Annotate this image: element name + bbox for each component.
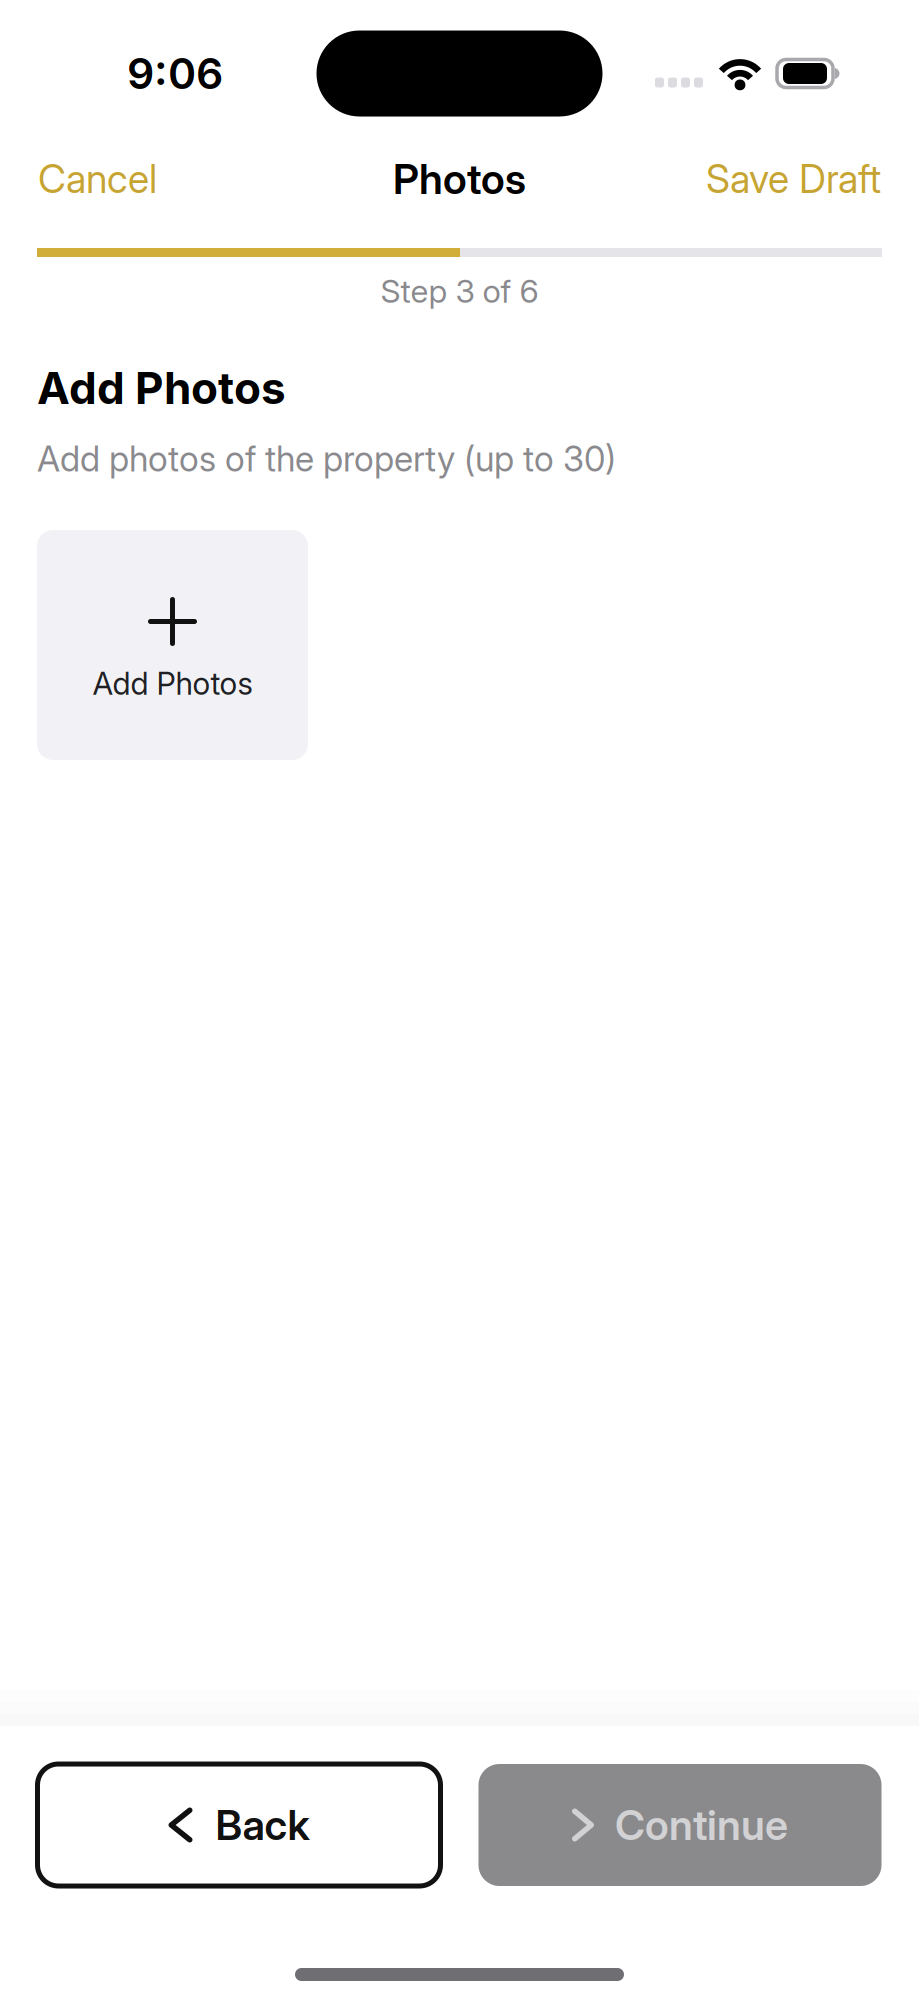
staticText: Step 3 of 6	[380, 272, 538, 310]
staticText: Add Photos	[37, 361, 286, 415]
button[interactable]: Continue	[478, 1764, 881, 1886]
button[interactable]: Cancel	[0, 142, 175, 216]
staticText: Add Photos	[92, 665, 252, 702]
staticText: Save Draft	[706, 156, 881, 202]
staticText: Add photos of the property (up to 30)	[37, 438, 616, 480]
staticText: Cancel	[38, 156, 157, 202]
staticText: 9:06	[127, 48, 223, 99]
button[interactable]: Add Photos	[37, 530, 308, 760]
button[interactable]: Back	[37, 1764, 440, 1886]
staticText: Back	[215, 1800, 309, 1850]
staticText: Photos	[393, 154, 526, 204]
button[interactable]: Save Draft	[688, 142, 919, 216]
staticText: Continue	[615, 1800, 788, 1850]
